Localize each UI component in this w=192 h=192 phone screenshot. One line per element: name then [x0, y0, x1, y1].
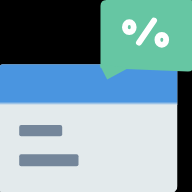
- button[interactable]: Discount coupon card: [0, 0, 192, 192]
